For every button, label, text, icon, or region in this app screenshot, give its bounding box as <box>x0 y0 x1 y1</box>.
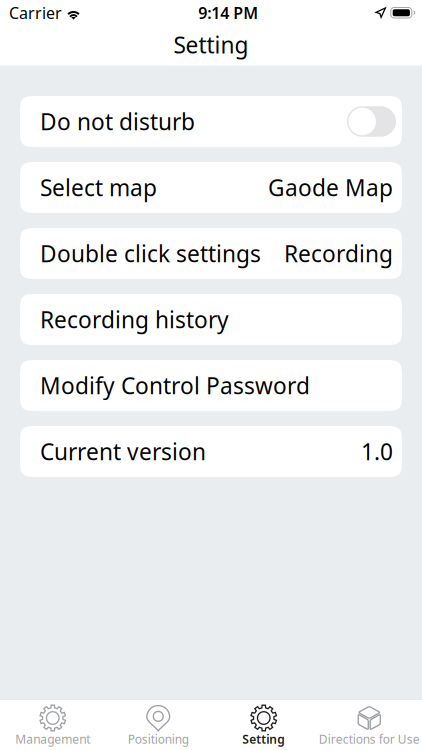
button[interactable]: Recording history <box>20 294 402 345</box>
button[interactable]: Current version <box>20 426 402 477</box>
staticText: Select map <box>40 172 157 202</box>
button[interactable]: Management <box>0 699 105 750</box>
staticText: Recording history <box>40 304 229 334</box>
staticText: 1.0 <box>361 436 393 466</box>
button[interactable]: Modify Control Password <box>20 360 402 411</box>
staticText: Directions for Use <box>319 731 420 747</box>
button[interactable]: Select map <box>20 162 402 213</box>
staticText: Modify Control Password <box>40 370 310 400</box>
staticText: 9:14 PM <box>198 2 258 23</box>
staticText: Carrier <box>9 2 62 23</box>
button[interactable]: Setting <box>211 699 316 750</box>
staticText: Do not disturb <box>40 106 195 136</box>
button[interactable]: Do not disturb <box>20 96 402 147</box>
staticText: Recording <box>284 238 393 268</box>
staticText: Current version <box>40 436 206 466</box>
staticText: Setting <box>242 731 285 747</box>
staticText: Setting <box>173 30 248 60</box>
button[interactable]: Directions for Use <box>316 699 422 750</box>
staticText: Management <box>15 731 90 747</box>
staticText: Positioning <box>128 731 189 747</box>
button[interactable]: Double click settings <box>20 228 402 279</box>
button[interactable]: Positioning <box>105 699 211 750</box>
staticText: Gaode Map <box>268 172 393 202</box>
staticText: Double click settings <box>40 238 261 268</box>
